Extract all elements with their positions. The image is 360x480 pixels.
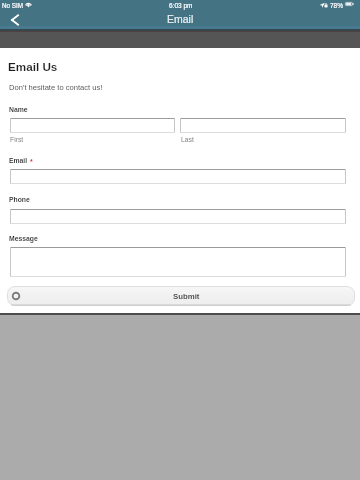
staticText: Email Us xyxy=(8,60,58,73)
staticText: 78% xyxy=(330,2,344,9)
staticText: Don't hesitate to contact us! xyxy=(9,83,103,91)
button[interactable] xyxy=(10,118,175,133)
staticText: No SIM xyxy=(2,2,23,9)
staticText: Email xyxy=(9,157,28,165)
staticText: * xyxy=(30,158,33,166)
button[interactable]: Back xyxy=(4,9,26,31)
staticText: Submit xyxy=(173,292,200,301)
staticText: First xyxy=(10,136,24,144)
button[interactable] xyxy=(180,118,346,133)
staticText: Email xyxy=(167,13,194,25)
button[interactable] xyxy=(10,247,346,277)
button[interactable] xyxy=(10,209,346,224)
button[interactable] xyxy=(10,169,346,184)
staticText: 6:03 pm xyxy=(169,2,193,9)
staticText: Message xyxy=(9,235,38,243)
staticText: Name xyxy=(9,106,28,114)
button[interactable]: Submit xyxy=(7,286,355,306)
staticText: Phone xyxy=(9,196,30,204)
staticText: Last xyxy=(181,136,194,144)
